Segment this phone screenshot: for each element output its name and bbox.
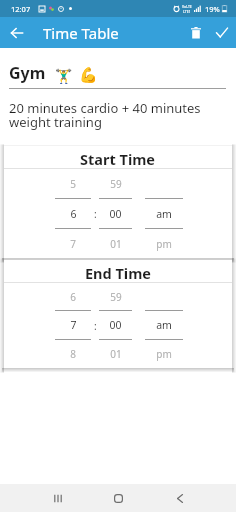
staticText: am bbox=[156, 318, 172, 332]
staticText: End Time bbox=[85, 263, 151, 282]
button[interactable]: Home bbox=[88, 484, 149, 512]
staticText: 8 bbox=[70, 347, 76, 361]
staticText: pm bbox=[156, 237, 172, 251]
staticText: VoLTE bbox=[182, 4, 192, 9]
staticText: 01 bbox=[110, 237, 122, 251]
button[interactable]: Delete bbox=[184, 17, 207, 48]
button[interactable]: Back bbox=[0, 17, 33, 48]
staticText: Start Time bbox=[80, 149, 156, 168]
staticText: 59 bbox=[110, 290, 122, 304]
staticText: 01 bbox=[110, 347, 122, 361]
staticText: 💪 bbox=[79, 66, 98, 84]
staticText: pm bbox=[156, 347, 172, 361]
staticText: am bbox=[156, 207, 172, 221]
staticText: 20 minutes cardio + 40 minutes weight tr… bbox=[9, 99, 212, 131]
button[interactable]: Back bbox=[149, 484, 210, 512]
staticText: 6 bbox=[70, 207, 77, 221]
staticText: 5 bbox=[70, 177, 76, 191]
staticText: 19% bbox=[205, 4, 220, 14]
staticText: 59 bbox=[110, 177, 122, 191]
staticText: 00 bbox=[109, 207, 122, 221]
staticText: LTE1 bbox=[183, 9, 191, 14]
staticText: 12:07 bbox=[11, 4, 31, 14]
button[interactable]: Save bbox=[207, 17, 236, 48]
staticText: 00 bbox=[109, 318, 122, 332]
staticText: 7 bbox=[70, 237, 76, 251]
staticText: Gym bbox=[9, 62, 46, 84]
button[interactable]: Recents bbox=[27, 484, 88, 512]
staticText: 6 bbox=[70, 290, 76, 304]
staticText: 🏋️‍♂️ bbox=[55, 68, 73, 84]
staticText: : bbox=[94, 207, 97, 221]
staticText: : bbox=[94, 319, 97, 333]
staticText: 7 bbox=[70, 318, 77, 332]
staticText: Time Table bbox=[43, 23, 119, 43]
